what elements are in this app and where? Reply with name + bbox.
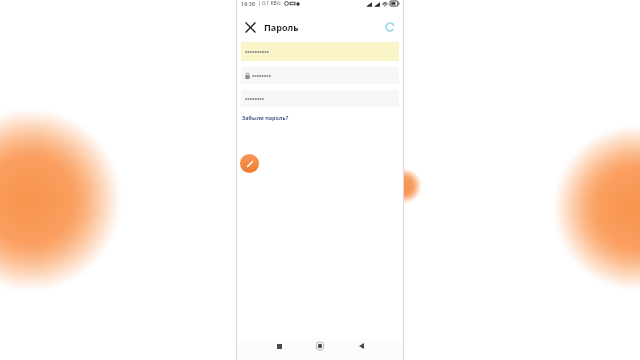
button[interactable]: Close	[240, 17, 260, 37]
staticText: | 0,1 KB/c	[258, 0, 282, 7]
button[interactable]: Забыли пароль?	[241, 113, 290, 122]
button[interactable]: Edit	[240, 154, 259, 173]
button[interactable]: Loading	[381, 18, 399, 36]
staticText: Забыли пароль?	[242, 114, 289, 121]
staticText: Пароль	[264, 21, 299, 33]
button[interactable]: Home	[312, 338, 328, 354]
button[interactable]: Back	[353, 338, 369, 354]
staticText: 16:36	[241, 0, 256, 7]
button[interactable]	[241, 90, 399, 107]
button[interactable]	[241, 67, 399, 84]
button[interactable]: Recents	[271, 338, 287, 354]
button[interactable]	[241, 42, 399, 61]
